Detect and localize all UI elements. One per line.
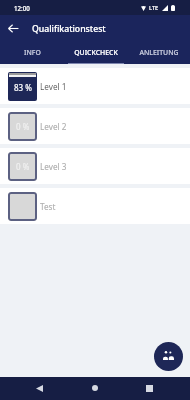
- staticText: 0 %: [16, 161, 30, 172]
- button[interactable]: INFO: [0, 42, 64, 64]
- button[interactable]: 83 %: [0, 68, 190, 104]
- staticText: Level 2: [40, 121, 67, 132]
- button[interactable]: Home: [85, 378, 105, 398]
- button[interactable]: 0 %: [0, 148, 190, 184]
- button[interactable]: ANLEITUNG: [127, 42, 190, 64]
- button[interactable]: Open group: [154, 342, 183, 371]
- staticText: Test: [40, 201, 56, 212]
- staticText: LTE: [149, 4, 159, 12]
- staticText: QUICKCHECK: [74, 48, 118, 57]
- button[interactable]: Back: [29, 378, 49, 398]
- button[interactable]: Recent apps: [139, 378, 159, 398]
- staticText: INFO: [24, 48, 41, 57]
- button[interactable]: QUICKCHECK: [64, 42, 127, 64]
- staticText: Level 3: [40, 161, 67, 172]
- staticText: 83 %: [14, 82, 32, 93]
- staticText: 0 %: [16, 121, 30, 132]
- button[interactable]: Test: [0, 188, 190, 224]
- staticText: 12:00: [14, 4, 30, 12]
- staticText: Level 1: [40, 81, 67, 92]
- button[interactable]: Back: [0, 15, 27, 42]
- staticText: ANLEITUNG: [139, 48, 179, 57]
- staticText: Qualifikationstest: [32, 23, 106, 35]
- button[interactable]: 0 %: [0, 108, 190, 144]
